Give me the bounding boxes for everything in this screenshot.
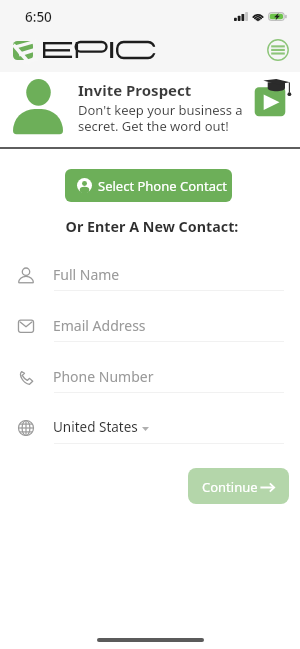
staticText: United States [53, 418, 138, 436]
button[interactable]: Continue [188, 468, 289, 504]
button[interactable]: United States [0, 418, 300, 452]
staticText: 6:50 [25, 8, 52, 26]
button[interactable]: Email Address [0, 316, 300, 350]
staticText: Select Phone Contact [98, 177, 228, 195]
button[interactable]: Select Phone Contact [65, 169, 232, 202]
staticText: Continue [202, 478, 258, 496]
staticText: Full Name [53, 265, 120, 284]
staticText: Email Address [53, 316, 146, 335]
button[interactable]: Phone Number [0, 367, 300, 401]
staticText: Or Enter A New Contact: [2, 217, 300, 236]
button[interactable]: Menu [267, 39, 289, 61]
button[interactable]: Full Name [0, 265, 300, 299]
staticText: Invite Prospect [78, 80, 192, 100]
button[interactable] [0, 72, 300, 147]
staticText: Phone Number [53, 367, 154, 386]
button[interactable]: Watch intro video [252, 74, 294, 120]
staticText: Don't keep your business a secret. Get t… [78, 101, 243, 135]
